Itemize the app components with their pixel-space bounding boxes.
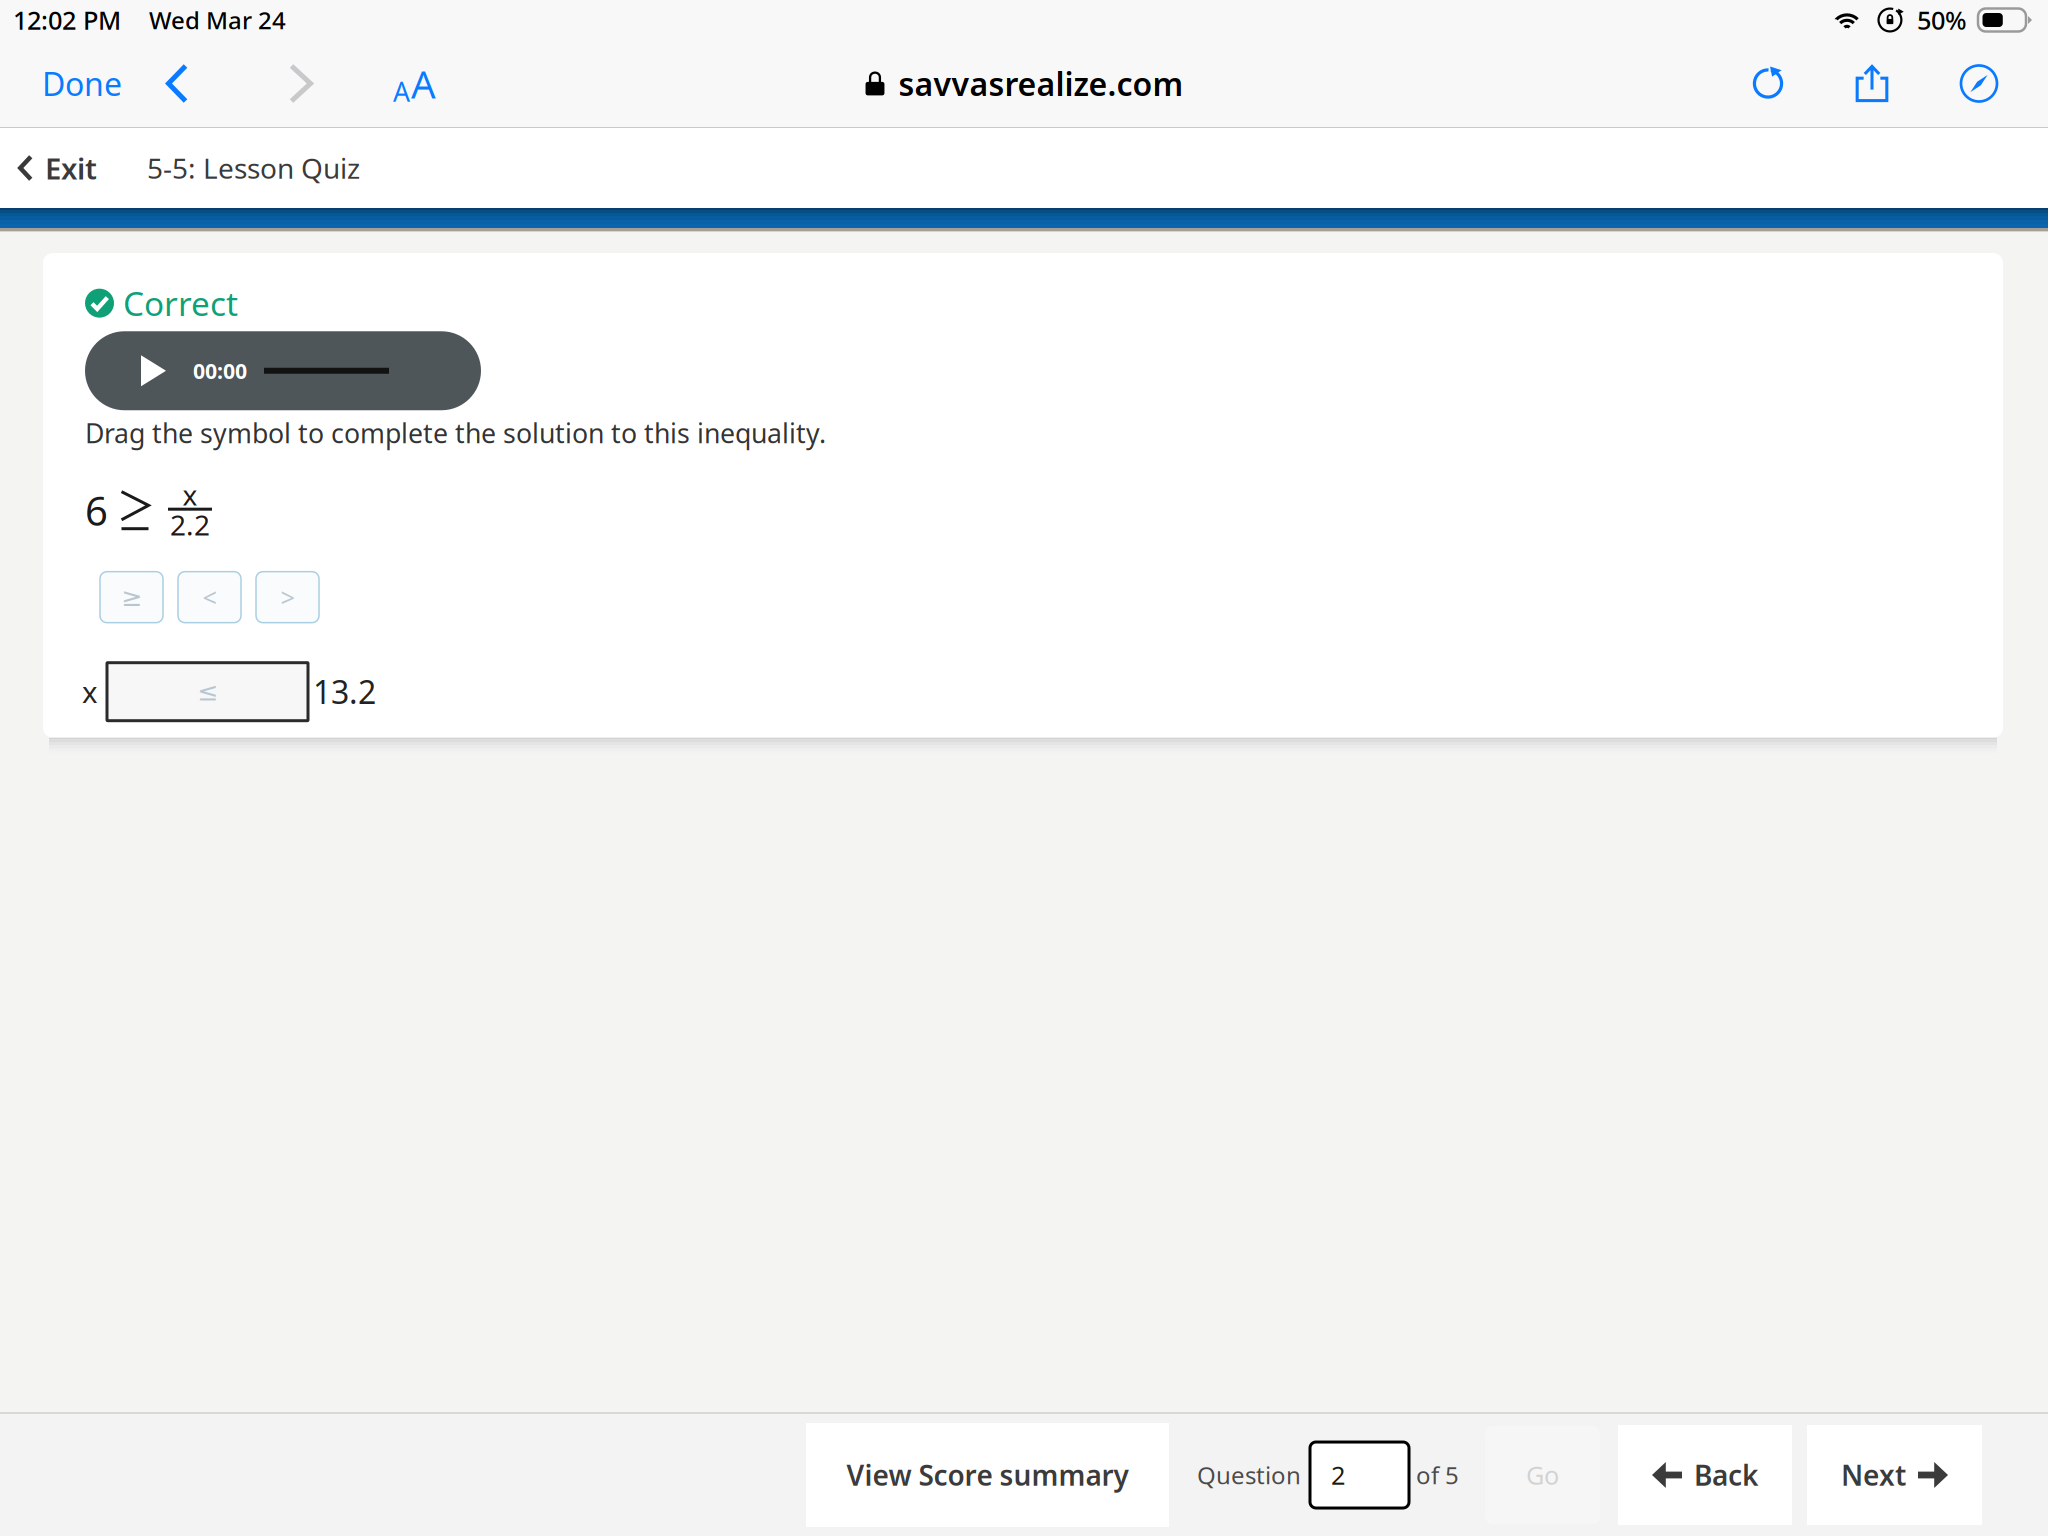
button[interactable]: > <box>256 572 319 623</box>
staticText: A <box>393 74 410 109</box>
button[interactable]: Share <box>1839 51 1905 115</box>
button[interactable]: Done <box>30 51 134 115</box>
staticText: 00:00 <box>193 357 247 385</box>
staticText: 13.2 <box>313 670 376 713</box>
button[interactable]: Next <box>1807 1425 1982 1525</box>
staticText: 2.2 <box>170 506 210 543</box>
button[interactable]: Text size <box>381 51 448 115</box>
staticText: Exit <box>45 148 97 187</box>
button[interactable]: Answer drop zone, less than or equal to <box>107 663 308 721</box>
staticText: Go <box>1526 1458 1559 1492</box>
staticText: 12:02 PM <box>13 3 121 37</box>
button[interactable]: Back <box>150 51 204 115</box>
staticText: < <box>202 580 216 614</box>
staticText: 6 <box>85 484 108 537</box>
staticText: Drag the symbol to complete the solution… <box>85 415 826 451</box>
staticText: 2 <box>1331 1458 1345 1492</box>
staticText: 50% <box>1917 3 1967 37</box>
staticText: of 5 <box>1416 1459 1459 1491</box>
staticText: A <box>411 58 436 109</box>
staticText: ≤ <box>197 677 218 706</box>
button[interactable]: Back <box>1618 1425 1792 1525</box>
staticText: savvasrealize.com <box>898 62 1183 105</box>
button[interactable]: Reload <box>1737 51 1799 115</box>
staticText: View Score summary <box>846 1456 1128 1494</box>
staticText: Next <box>1841 1456 1906 1494</box>
button[interactable]: ≥ <box>100 572 163 623</box>
staticText: 5-5: Lesson Quiz <box>147 149 360 187</box>
staticText: ≥ <box>121 583 142 612</box>
staticText: x <box>182 476 197 513</box>
staticText: x <box>82 672 98 711</box>
button[interactable]: Go <box>1485 1426 1600 1524</box>
button[interactable]: Open in Safari <box>1947 51 2011 115</box>
button[interactable]: Exit <box>0 133 115 203</box>
staticText: > <box>280 580 294 614</box>
staticText: Done <box>42 62 122 105</box>
button[interactable]: < <box>178 572 241 623</box>
staticText: Question <box>1197 1459 1301 1491</box>
button[interactable]: Forward <box>273 51 329 115</box>
staticText: Wed Mar 24 <box>149 4 286 36</box>
button[interactable]: View Score summary <box>806 1423 1169 1527</box>
staticText: Correct <box>123 281 238 325</box>
staticText: Back <box>1694 1456 1758 1494</box>
